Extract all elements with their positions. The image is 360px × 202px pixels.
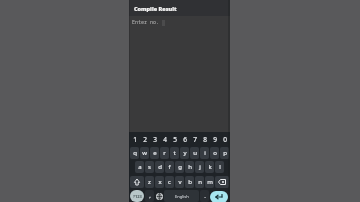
staticText: y bbox=[183, 149, 187, 157]
staticText: x bbox=[158, 178, 162, 186]
button[interactable]: m bbox=[205, 176, 214, 188]
button[interactable]: Enter no. bbox=[132, 19, 160, 26]
button[interactable]: k bbox=[205, 161, 214, 173]
button[interactable]: s bbox=[145, 161, 154, 173]
staticText: 6 bbox=[183, 135, 187, 144]
button[interactable]: r bbox=[160, 147, 169, 159]
staticText: i bbox=[204, 149, 206, 157]
button[interactable]: 3 bbox=[150, 133, 160, 146]
staticText: t bbox=[173, 149, 176, 157]
button[interactable]: 7 bbox=[190, 133, 200, 146]
button[interactable] bbox=[215, 176, 229, 188]
staticText: 5 bbox=[173, 135, 177, 144]
button[interactable]: a bbox=[135, 161, 144, 173]
button[interactable]: 8 bbox=[200, 133, 210, 146]
staticText: 8 bbox=[203, 135, 207, 144]
button[interactable]: d bbox=[155, 161, 164, 173]
button[interactable]: w bbox=[140, 147, 149, 159]
button[interactable]: f bbox=[165, 161, 174, 173]
button[interactable]: g bbox=[175, 161, 184, 173]
button[interactable]: 0 bbox=[220, 133, 230, 146]
staticText: d bbox=[158, 163, 162, 171]
button[interactable]: 4 bbox=[160, 133, 170, 146]
staticText: 3 bbox=[153, 135, 157, 144]
staticText: r bbox=[163, 149, 166, 157]
button[interactable]: 2 bbox=[140, 133, 150, 146]
staticText: m bbox=[207, 178, 213, 186]
staticText: 7 bbox=[193, 135, 197, 144]
staticText: Compile Result bbox=[134, 5, 177, 12]
staticText: , bbox=[149, 192, 151, 200]
staticText: g bbox=[178, 163, 182, 171]
button[interactable]: e bbox=[150, 147, 159, 159]
button[interactable]: q bbox=[130, 147, 139, 159]
staticText: z bbox=[148, 178, 151, 186]
button[interactable]: n bbox=[195, 176, 204, 188]
button[interactable]: t bbox=[170, 147, 179, 159]
staticText: 4 bbox=[163, 135, 167, 144]
button[interactable]: v bbox=[175, 176, 184, 188]
staticText: w bbox=[142, 149, 147, 157]
button[interactable]: i bbox=[200, 147, 209, 159]
staticText: v bbox=[178, 178, 182, 186]
button[interactable]: c bbox=[165, 176, 174, 188]
button[interactable]: h bbox=[185, 161, 194, 173]
staticText: English bbox=[175, 194, 189, 199]
staticText: q bbox=[133, 149, 137, 157]
button[interactable]: . bbox=[200, 190, 209, 202]
button[interactable]: , bbox=[145, 190, 154, 202]
button[interactable]: p bbox=[220, 147, 229, 159]
staticText: ?123 bbox=[133, 194, 142, 199]
staticText: h bbox=[188, 163, 192, 171]
staticText: l bbox=[219, 163, 221, 171]
staticText: 0 bbox=[223, 135, 227, 144]
staticText: . bbox=[204, 192, 206, 200]
button[interactable]: l bbox=[215, 161, 224, 173]
staticText: c bbox=[168, 178, 171, 186]
button[interactable]: b bbox=[185, 176, 194, 188]
button[interactable]: 6 bbox=[180, 133, 190, 146]
staticText: n bbox=[198, 178, 202, 186]
button[interactable]: 9 bbox=[210, 133, 220, 146]
staticText: 9 bbox=[213, 135, 217, 144]
staticText: o bbox=[213, 149, 217, 157]
staticText: a bbox=[138, 163, 142, 171]
button[interactable] bbox=[155, 190, 164, 202]
staticText: u bbox=[193, 149, 197, 157]
button[interactable]: ?123 bbox=[130, 190, 144, 202]
button[interactable]: z bbox=[145, 176, 154, 188]
button[interactable] bbox=[130, 176, 144, 188]
staticText: j bbox=[199, 163, 201, 171]
button[interactable]: u bbox=[190, 147, 199, 159]
staticText: f bbox=[168, 163, 171, 171]
button[interactable]: 1 bbox=[130, 133, 140, 146]
staticText: 2 bbox=[143, 135, 147, 144]
staticText: 1 bbox=[133, 135, 137, 144]
button[interactable] bbox=[210, 191, 228, 202]
staticText: e bbox=[153, 149, 157, 157]
button[interactable]: o bbox=[210, 147, 219, 159]
button[interactable]: x bbox=[155, 176, 164, 188]
staticText: b bbox=[188, 178, 192, 186]
button[interactable]: Compile Result bbox=[129, 0, 230, 16]
button[interactable]: j bbox=[195, 161, 204, 173]
button[interactable]: 5 bbox=[170, 133, 180, 146]
staticText: p bbox=[223, 149, 227, 157]
staticText: s bbox=[148, 163, 151, 171]
button[interactable]: y bbox=[180, 147, 189, 159]
staticText: k bbox=[208, 163, 212, 171]
button[interactable]: English bbox=[164, 190, 199, 202]
